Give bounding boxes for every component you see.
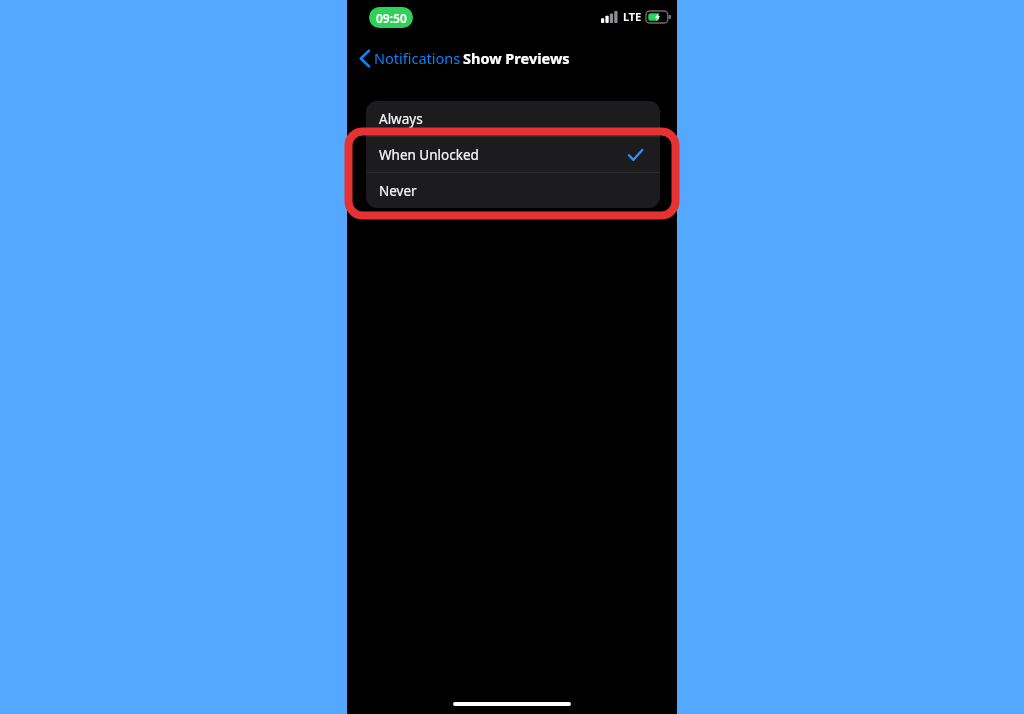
staticText: Always bbox=[379, 110, 423, 128]
staticText: Show Previews bbox=[463, 48, 570, 68]
button[interactable]: Notifications bbox=[355, 42, 465, 74]
button[interactable]: When Unlocked bbox=[366, 137, 660, 173]
staticText: When Unlocked bbox=[379, 146, 479, 164]
button[interactable]: Always bbox=[366, 101, 660, 137]
staticText: Never bbox=[379, 182, 417, 200]
staticText: LTE bbox=[623, 9, 642, 24]
button[interactable]: Never bbox=[366, 173, 660, 208]
staticText: Notifications bbox=[374, 48, 461, 68]
staticText: 09:50 bbox=[376, 10, 407, 26]
